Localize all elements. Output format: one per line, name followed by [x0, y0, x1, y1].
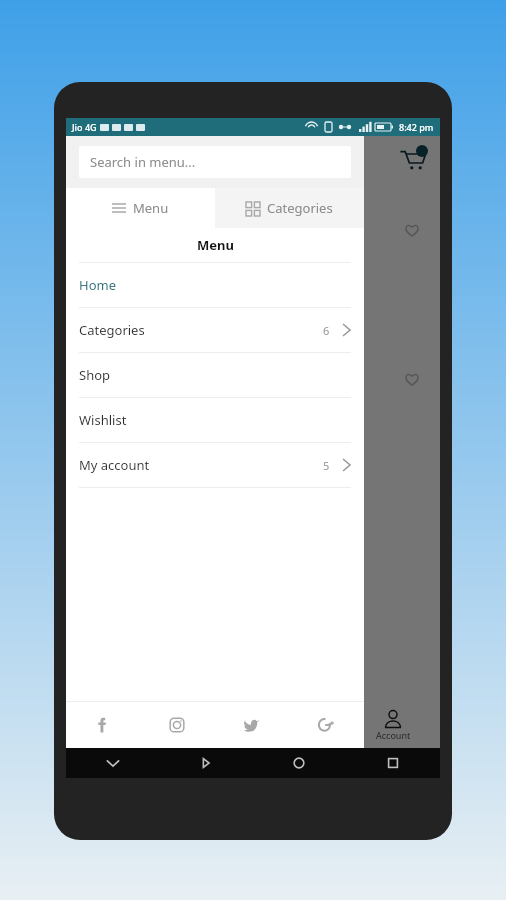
- button[interactable]: Account: [346, 702, 440, 748]
- button[interactable]: Cart: [398, 145, 428, 175]
- staticText: Menu: [197, 236, 234, 254]
- button[interactable]: Twitter: [214, 702, 289, 748]
- staticText: Categories: [82, 186, 148, 204]
- button[interactable]: Search in menu...: [79, 146, 351, 178]
- staticText: Menu: [133, 199, 169, 217]
- button[interactable]: Wishlist: [66, 398, 364, 442]
- staticText: Account: [376, 729, 411, 741]
- staticText: Wishlist: [79, 411, 127, 429]
- button[interactable]: My account: [66, 443, 364, 487]
- button[interactable]: Home: [252, 748, 346, 778]
- button[interactable]: Back: [159, 748, 252, 778]
- button[interactable]: Instagram: [140, 702, 214, 748]
- button[interactable]: Shop: [66, 353, 364, 397]
- staticText: Jio 4G: [72, 121, 97, 133]
- button[interactable]: Google Plus: [289, 702, 364, 748]
- staticText: 6: [323, 323, 330, 338]
- staticText: Categories: [79, 321, 145, 339]
- staticText: Categories: [267, 199, 333, 217]
- button[interactable]: Home: [66, 263, 364, 307]
- staticText: Shop: [79, 366, 111, 384]
- button[interactable]: Menu: [66, 188, 215, 228]
- button[interactable]: Facebook: [66, 702, 140, 748]
- button[interactable]: Categories: [66, 308, 364, 352]
- staticText: 5: [323, 458, 330, 473]
- button[interactable]: Hide keyboard: [66, 748, 159, 778]
- staticText: Search in menu...: [90, 153, 196, 171]
- staticText: 8:42 pm: [399, 121, 434, 133]
- staticText: L 500 ...: [68, 459, 112, 475]
- staticText: My account: [79, 456, 150, 474]
- button[interactable]: Categories: [215, 188, 364, 228]
- button[interactable]: Recents: [346, 748, 440, 778]
- staticText: Home: [79, 276, 116, 294]
